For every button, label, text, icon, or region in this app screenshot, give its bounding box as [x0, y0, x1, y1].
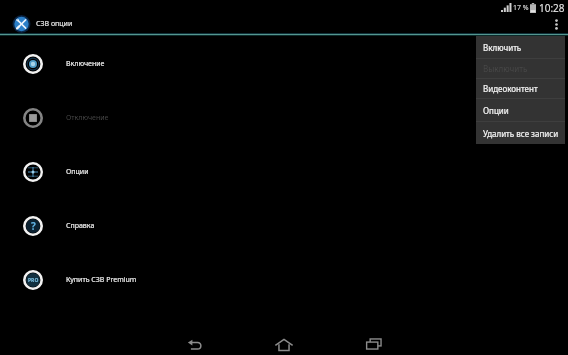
button[interactable]: More options: [544, 15, 568, 33]
staticText: 17 %: [513, 3, 529, 13]
staticText: Отключение: [66, 113, 109, 123]
staticText: СЗВ опции: [36, 19, 73, 29]
staticText: Опции: [66, 167, 89, 177]
button[interactable]: Включение: [0, 37, 568, 91]
staticText: Купить СЗВ Premium: [66, 275, 137, 285]
staticText: Выключить: [483, 63, 528, 74]
staticText: Справка: [66, 221, 95, 231]
button[interactable]: Home: [239, 333, 329, 355]
button[interactable]: Опции: [0, 145, 568, 199]
staticText: 10:28: [539, 1, 565, 15]
staticText: Видеоконтент: [483, 83, 538, 94]
button[interactable]: Включить: [476, 36, 565, 58]
button[interactable]: ?: [0, 199, 568, 253]
staticText: ?: [31, 219, 36, 233]
button[interactable]: Опции: [476, 99, 565, 121]
button[interactable]: PRO: [0, 253, 568, 307]
staticText: Включить: [483, 42, 522, 53]
button[interactable]: Отключение: [0, 91, 568, 145]
staticText: Удалить все записи: [483, 128, 559, 139]
button[interactable]: Удалить все записи: [476, 122, 565, 144]
button[interactable]: Видеоконтент: [476, 79, 565, 98]
staticText: Опции: [483, 105, 509, 116]
button[interactable]: Back: [149, 333, 239, 355]
staticText: PRO: [28, 277, 39, 284]
button[interactable]: Выключить: [476, 59, 565, 78]
staticText: Включение: [66, 59, 105, 69]
button[interactable]: Recents: [329, 333, 419, 355]
